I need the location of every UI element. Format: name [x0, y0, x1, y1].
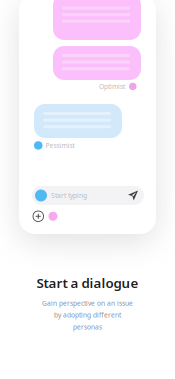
button[interactable]: Add: [33, 211, 43, 221]
staticText: Pessimist: [45, 141, 74, 150]
button[interactable]: Start typing: [32, 186, 144, 205]
button[interactable]: Persona: [48, 212, 57, 221]
staticText: personas: [73, 322, 102, 331]
staticText: Gain perspective on an issue: [42, 299, 133, 308]
staticText: Start typing: [51, 191, 87, 200]
staticText: Start a dialogue: [36, 274, 138, 292]
staticText: by adopting different: [54, 311, 121, 319]
button[interactable]: Optimist: [99, 82, 136, 91]
button[interactable]: Pessimist: [34, 141, 74, 150]
staticText: Optimist: [99, 82, 125, 91]
